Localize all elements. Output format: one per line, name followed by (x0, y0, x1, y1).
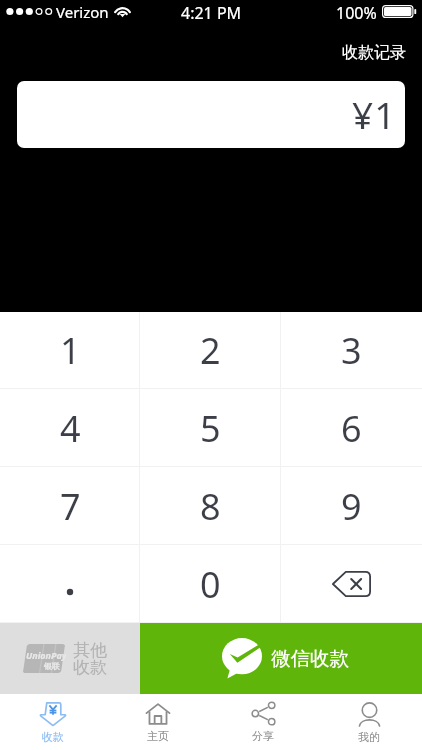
button[interactable]: Delete (281, 545, 422, 623)
button[interactable]: 8 (140, 467, 281, 545)
button[interactable] (0, 545, 140, 623)
staticText: 收款 (42, 730, 64, 744)
staticText: ¥1 (352, 89, 397, 139)
staticText: 1 (60, 326, 81, 375)
staticText: 主页 (147, 729, 169, 743)
staticText: 3 (341, 326, 362, 375)
staticText: 分享 (252, 729, 274, 743)
staticText: 7 (60, 482, 81, 531)
staticText: 银联 (44, 661, 60, 671)
button[interactable]: ¥1 (17, 81, 405, 148)
staticText: 9 (341, 482, 362, 531)
staticText: 收款记录 (342, 43, 406, 63)
staticText: 2 (200, 326, 221, 375)
button[interactable]: 主页 (105, 694, 210, 750)
staticText: 微信收款 (271, 646, 349, 671)
staticText: 其他 收款 (73, 640, 107, 678)
button[interactable]: 收款记录 (334, 38, 414, 68)
staticText: 0 (200, 560, 221, 609)
button[interactable]: 5 (140, 389, 281, 467)
staticText: 我的 (358, 730, 380, 744)
other: Delete (332, 571, 371, 597)
button[interactable]: 7 (0, 467, 140, 545)
staticText: Verizon (56, 2, 109, 22)
staticText: 5 (200, 404, 221, 453)
staticText: UnionPay (26, 649, 66, 661)
button[interactable]: 分享 (210, 694, 316, 750)
staticText: 100% (336, 2, 377, 22)
staticText: 4 (60, 404, 81, 453)
button[interactable]: 我的 (316, 694, 422, 750)
button[interactable]: 0 (140, 545, 281, 623)
button[interactable]: 3 (281, 312, 422, 389)
button[interactable]: 微信收款 (140, 623, 422, 694)
staticText: 8 (200, 482, 221, 531)
button[interactable]: 1 (0, 312, 140, 389)
staticText: 4:21 PM (181, 2, 242, 22)
button[interactable]: UnionPay (0, 623, 140, 694)
button[interactable]: 6 (281, 389, 422, 467)
button[interactable]: 收款 (0, 694, 105, 750)
button[interactable]: 4 (0, 389, 140, 467)
button[interactable]: 9 (281, 467, 422, 545)
staticText: 6 (341, 404, 362, 453)
button[interactable]: 2 (140, 312, 281, 389)
